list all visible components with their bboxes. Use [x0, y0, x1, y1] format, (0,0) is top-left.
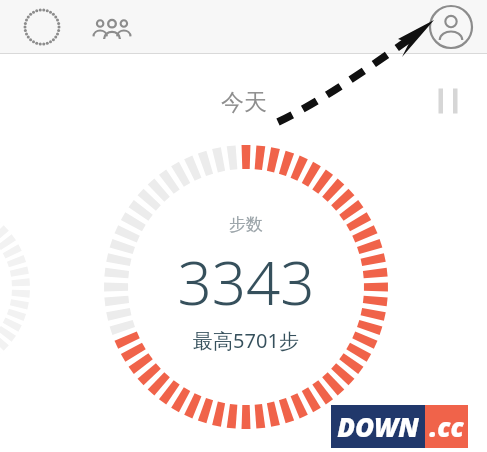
button[interactable]: Profile — [427, 3, 475, 51]
button[interactable]: 今天 — [211, 84, 277, 121]
staticText: 今天 — [221, 88, 267, 117]
staticText: 最高5701步 — [193, 327, 299, 354]
button[interactable]: Pause — [431, 84, 465, 118]
staticText: 步数 — [229, 214, 263, 235]
staticText: .cc — [429, 409, 464, 444]
button[interactable]: Friends — [88, 3, 136, 51]
button[interactable]: Activity — [20, 5, 64, 49]
staticText: DOWN — [337, 409, 419, 444]
staticText: 3343 — [177, 241, 315, 323]
